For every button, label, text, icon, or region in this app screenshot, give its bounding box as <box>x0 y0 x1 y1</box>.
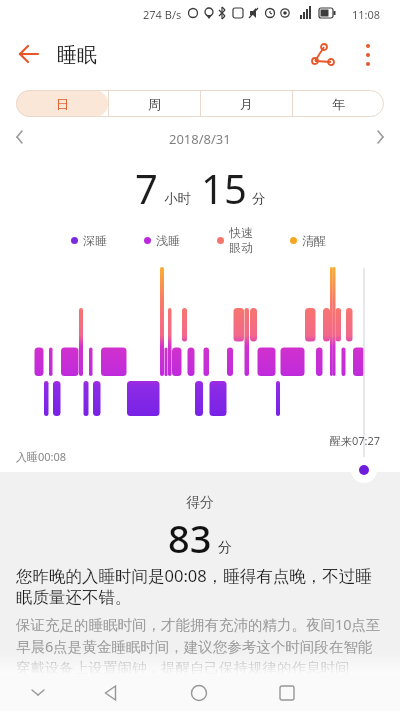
staticText: 醒来07:27 <box>330 433 381 448</box>
button[interactable] <box>306 40 342 76</box>
staticText: 浅睡 <box>156 233 180 248</box>
button[interactable] <box>271 677 303 709</box>
staticText: 睡眠 <box>57 43 97 68</box>
button[interactable] <box>22 677 54 709</box>
staticText: 日 <box>56 96 69 112</box>
staticText: 保证充足的睡眠时间，才能拥有充沛的精力。夜间10点至早晨6点是黄金睡眠时间，建议… <box>16 614 384 677</box>
button[interactable]: 月 <box>201 90 292 117</box>
staticText: 15 <box>201 161 247 215</box>
button[interactable]: 周 <box>109 90 200 117</box>
staticText: 深睡 <box>83 233 107 248</box>
staticText: 周 <box>148 96 161 112</box>
staticText: 分 <box>252 190 266 207</box>
staticText: 小时 <box>164 190 191 207</box>
staticText: 眼动 <box>229 240 253 255</box>
staticText: 得分 <box>186 494 214 512</box>
button[interactable] <box>94 677 126 709</box>
button[interactable] <box>368 125 392 149</box>
button[interactable] <box>352 40 384 72</box>
staticText: 83 <box>168 512 212 564</box>
staticText: 快速 <box>229 225 253 240</box>
button[interactable]: 日 <box>16 90 108 117</box>
button[interactable] <box>351 457 377 483</box>
staticText: 月 <box>240 96 253 112</box>
button[interactable] <box>183 677 215 709</box>
button[interactable] <box>8 38 48 78</box>
staticText: 分 <box>218 539 232 557</box>
staticText: 7 <box>135 161 158 215</box>
staticText: 入睡00:08 <box>16 449 67 464</box>
staticText: 274 B/s <box>143 7 182 22</box>
button[interactable]: 年 <box>293 90 384 117</box>
staticText: 2018/8/31 <box>169 130 231 148</box>
staticText: 年 <box>332 96 345 112</box>
button[interactable] <box>8 125 32 149</box>
staticText: 您昨晚的入睡时间是00:08，睡得有点晚，不过睡眠质量还不错。 <box>16 564 384 608</box>
staticText: 11:08 <box>352 7 381 22</box>
staticText: 清醒 <box>302 233 326 248</box>
